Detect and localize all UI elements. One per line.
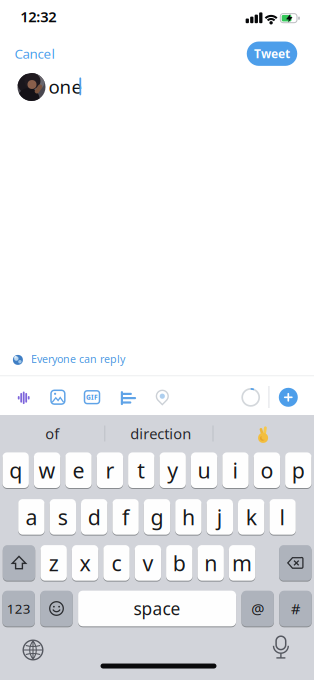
button[interactable]: [271, 635, 291, 661]
button[interactable]: [17, 73, 45, 101]
button[interactable]: i: [222, 452, 249, 488]
staticText: c: [111, 549, 121, 577]
button[interactable]: GIF: [81, 386, 103, 408]
staticText: u: [198, 456, 211, 484]
staticText: q: [9, 456, 22, 484]
staticText: space: [134, 597, 181, 620]
staticText: e: [72, 456, 84, 484]
button[interactable]: #: [279, 590, 312, 627]
button[interactable]: h: [175, 499, 202, 535]
staticText: f: [122, 503, 129, 531]
button[interactable]: d: [81, 499, 107, 535]
button[interactable]: direction: [109, 415, 213, 452]
staticText: x: [80, 549, 91, 577]
staticText: j: [217, 503, 223, 531]
button[interactable]: [21, 638, 45, 662]
button[interactable]: n: [197, 545, 224, 581]
button[interactable]: [47, 386, 69, 408]
button[interactable]: y: [159, 452, 186, 488]
button[interactable]: b: [166, 545, 192, 581]
staticText: g: [150, 503, 163, 531]
staticText: d: [88, 503, 101, 531]
button[interactable]: space: [78, 590, 236, 627]
button[interactable]: Everyone can reply: [0, 345, 314, 375]
staticText: p: [292, 456, 305, 484]
staticText: s: [58, 503, 68, 531]
staticText: t: [137, 456, 145, 484]
staticText: z: [49, 549, 59, 577]
button[interactable]: x: [72, 545, 98, 581]
button[interactable]: of: [0, 415, 104, 452]
button[interactable]: [3, 545, 35, 581]
staticText: m: [232, 549, 252, 577]
staticText: one: [48, 74, 82, 99]
staticText: v: [142, 549, 153, 577]
staticText: b: [173, 549, 186, 577]
staticText: k: [246, 503, 257, 531]
button[interactable]: g: [144, 499, 170, 535]
staticText: Everyone can reply: [31, 352, 125, 366]
button[interactable]: [279, 388, 298, 407]
button[interactable]: o: [254, 452, 280, 488]
staticText: o: [260, 456, 273, 484]
staticText: 12:32: [20, 7, 56, 26]
staticText: 123: [7, 600, 31, 617]
button[interactable]: z: [40, 545, 67, 581]
button[interactable]: t: [128, 452, 154, 488]
staticText: @: [251, 599, 264, 618]
button[interactable]: a: [18, 499, 45, 535]
staticText: l: [280, 503, 286, 531]
staticText: direction: [130, 424, 191, 443]
button[interactable]: Cancel: [14, 43, 84, 65]
button[interactable]: k: [238, 499, 264, 535]
staticText: n: [204, 549, 217, 577]
button[interactable]: e: [65, 452, 92, 488]
staticText: GIF: [86, 393, 98, 402]
button[interactable]: q: [2, 452, 29, 488]
button[interactable]: [117, 387, 139, 409]
button[interactable]: [212, 415, 312, 452]
button[interactable]: u: [191, 452, 217, 488]
button[interactable]: [40, 590, 73, 627]
staticText: of: [45, 424, 59, 443]
button[interactable]: l: [269, 499, 296, 535]
staticText: a: [25, 503, 37, 531]
staticText: r: [105, 456, 114, 484]
staticText: h: [182, 503, 195, 531]
staticText: y: [167, 456, 178, 484]
button[interactable]: f: [112, 499, 139, 535]
button[interactable]: [279, 545, 311, 581]
staticText: i: [232, 456, 238, 484]
button[interactable]: m: [229, 545, 255, 581]
staticText: Tweet: [254, 46, 290, 62]
button[interactable]: p: [285, 452, 311, 488]
staticText: w: [39, 456, 56, 484]
button[interactable]: @: [241, 590, 274, 627]
button[interactable]: j: [207, 499, 233, 535]
button[interactable]: r: [97, 452, 123, 488]
button[interactable]: [151, 387, 173, 409]
button[interactable]: c: [103, 545, 130, 581]
staticText: Cancel: [14, 45, 54, 62]
button[interactable]: w: [34, 452, 60, 488]
button[interactable]: 123: [2, 590, 35, 627]
button[interactable]: [13, 387, 35, 409]
button[interactable]: s: [50, 499, 76, 535]
button[interactable]: Tweet: [247, 41, 297, 66]
staticText: #: [291, 599, 300, 618]
button[interactable]: v: [135, 545, 161, 581]
